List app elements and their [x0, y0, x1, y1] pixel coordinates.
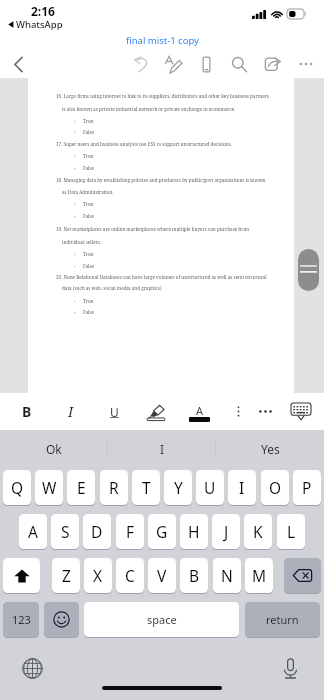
button[interactable]: final mist-1 copy	[120, 32, 205, 49]
button[interactable]: Y	[164, 470, 192, 505]
staticText: R	[109, 477, 119, 498]
button[interactable]: Undo	[124, 50, 157, 78]
staticText: 18. Managing data by establishing polici…	[56, 177, 266, 183]
button[interactable]: M	[245, 558, 273, 593]
staticText: 17. Super users and business analysts us…	[56, 141, 232, 147]
staticText: W	[42, 477, 57, 498]
staticText: True	[83, 201, 94, 207]
staticText: X	[93, 565, 103, 586]
staticText: Y	[174, 477, 183, 498]
button[interactable]: B	[180, 558, 208, 593]
button[interactable]: I	[108, 430, 216, 468]
button[interactable]: Back	[4, 50, 32, 78]
staticText: Z	[62, 565, 71, 586]
button[interactable]: D	[83, 514, 111, 549]
button[interactable]: More	[252, 393, 278, 430]
staticText: False	[83, 129, 95, 135]
button[interactable]: Ok	[0, 430, 108, 468]
button[interactable]: Underline	[101, 393, 127, 430]
button[interactable]: Formatting options	[225, 393, 251, 430]
button[interactable]: E	[67, 470, 95, 505]
staticText: I	[239, 477, 245, 498]
button[interactable]: Device	[190, 50, 223, 78]
staticText: False	[83, 213, 95, 219]
staticText: 16. Large firms using internet to link t…	[56, 93, 269, 99]
staticText: I	[160, 441, 165, 457]
staticText: K	[253, 521, 263, 542]
button[interactable]: K	[244, 514, 272, 549]
button[interactable]: W	[35, 470, 63, 505]
button[interactable]: More options	[289, 50, 322, 78]
staticText: B	[189, 565, 200, 586]
button[interactable]: Scroll	[298, 249, 319, 291]
button[interactable]: Highlight	[143, 393, 169, 430]
button[interactable]: N	[213, 558, 241, 593]
button[interactable]: Numbers and symbols	[3, 602, 39, 637]
button[interactable]: Emoji	[44, 602, 79, 637]
staticText: Yes	[261, 441, 280, 457]
button[interactable]: G	[148, 514, 176, 549]
staticText: A	[28, 521, 38, 542]
staticText: data (such as web, social media and grap…	[62, 285, 162, 291]
staticText: WhatsApp	[16, 18, 63, 31]
button[interactable]: S	[51, 514, 79, 549]
staticText: I	[68, 402, 74, 421]
staticText: -	[74, 298, 76, 304]
button[interactable]: Change keyboard	[18, 654, 47, 683]
button[interactable]: Backspace	[284, 558, 321, 593]
staticText: 123	[12, 612, 31, 627]
staticText: return	[266, 612, 299, 627]
staticText: E	[77, 477, 86, 498]
staticText: B	[22, 402, 32, 421]
button[interactable]: H	[180, 514, 208, 549]
staticText: 2:16	[31, 3, 55, 19]
staticText: False	[83, 165, 95, 171]
button[interactable]: Share	[256, 50, 289, 78]
button[interactable]: O	[261, 470, 289, 505]
staticText: -	[74, 201, 76, 207]
button[interactable]: Return	[245, 602, 320, 637]
button[interactable]: Space	[84, 602, 239, 637]
staticText: -	[74, 129, 76, 135]
button[interactable]: X	[84, 558, 112, 593]
button[interactable]: P	[293, 470, 321, 505]
staticText: -	[74, 309, 76, 315]
staticText: as Data Administration.	[62, 189, 114, 195]
staticText: O	[269, 477, 282, 498]
button[interactable]: C	[116, 558, 144, 593]
button[interactable]: Italic	[58, 393, 84, 430]
button[interactable]: Z	[52, 558, 80, 593]
staticText: G	[156, 521, 168, 542]
button[interactable]: T	[132, 470, 160, 505]
staticText: U	[204, 477, 216, 498]
staticText: -	[74, 213, 76, 219]
button[interactable]: A	[19, 514, 47, 549]
button[interactable]: J	[212, 514, 240, 549]
button[interactable]: F	[116, 514, 144, 549]
staticText: V	[157, 565, 167, 586]
staticText: True	[83, 118, 94, 124]
button[interactable]: R	[100, 470, 128, 505]
staticText: space	[147, 612, 177, 627]
staticText: False	[83, 263, 95, 269]
staticText: -	[74, 118, 76, 124]
button[interactable]: Dictate	[276, 654, 305, 683]
button[interactable]: Hide keyboard	[288, 393, 314, 430]
button[interactable]: Bold	[14, 393, 40, 430]
staticText: -	[74, 165, 76, 171]
button[interactable]: Search	[223, 50, 256, 78]
button[interactable]: U	[196, 470, 224, 505]
staticText: -	[74, 153, 76, 159]
staticText: True	[83, 153, 94, 159]
button[interactable]: L	[277, 514, 305, 549]
button[interactable]: Shift	[3, 558, 40, 593]
button[interactable]: Markup	[157, 50, 190, 78]
staticText: final mist-1 copy	[126, 34, 199, 47]
button[interactable]: Q	[3, 470, 31, 505]
staticText: S	[61, 521, 70, 542]
button[interactable]: I	[228, 470, 256, 505]
button[interactable]: Text colour	[186, 393, 212, 430]
staticText: M	[252, 565, 267, 586]
button[interactable]: V	[148, 558, 176, 593]
button[interactable]: Yes	[216, 430, 324, 468]
